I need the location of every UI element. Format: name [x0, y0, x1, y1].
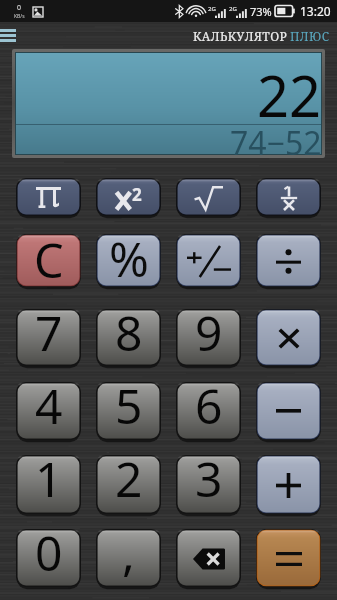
staticText: 22: [257, 57, 322, 133]
staticText: 74−52: [230, 121, 322, 158]
staticText: 7: [35, 300, 63, 358]
staticText: 2: [115, 446, 143, 506]
button[interactable]: Pi: [16, 178, 81, 217]
staticText: 5: [115, 373, 143, 432]
staticText: ПЛЮС: [290, 28, 330, 44]
staticText: 13:20: [300, 3, 331, 19]
staticText: КАЛЬКУЛЯТОР: [193, 28, 288, 44]
button[interactable]: 6: [176, 382, 241, 441]
staticText: 8: [115, 300, 143, 358]
staticText: C: [34, 228, 64, 282]
button[interactable]: ,: [96, 529, 161, 588]
staticText: KB/s: [14, 13, 25, 20]
button[interactable]: 0: [16, 529, 81, 588]
staticText: 0: [35, 520, 63, 579]
button[interactable]: 8: [96, 309, 161, 367]
button[interactable]: Reciprocal: [256, 178, 321, 217]
button[interactable]: Plus: [256, 455, 321, 515]
staticText: 1: [35, 446, 63, 506]
staticText: 2G: [208, 5, 216, 13]
staticText: 6: [195, 373, 223, 432]
button[interactable]: C: [16, 234, 81, 288]
button[interactable]: Equals: [256, 529, 321, 588]
button[interactable]: 5: [96, 382, 161, 441]
button[interactable]: 7: [16, 309, 81, 367]
staticText: %: [109, 226, 149, 280]
button[interactable]: Square root: [176, 178, 241, 217]
button[interactable]: Delete: [176, 529, 241, 588]
button[interactable]: Plus minus: [176, 234, 241, 288]
button[interactable]: Minus: [256, 382, 321, 441]
staticText: 73%: [250, 4, 272, 19]
button[interactable]: 9: [176, 309, 241, 367]
staticText: 2G: [229, 5, 237, 13]
staticText: 9: [195, 300, 223, 358]
button[interactable]: 3: [176, 455, 241, 515]
button[interactable]: Multiply: [256, 309, 321, 367]
staticText: 4: [35, 373, 63, 432]
staticText: 2: [132, 183, 142, 206]
staticText: 0: [17, 3, 22, 13]
button[interactable]: Menu: [0, 26, 22, 45]
button[interactable]: %: [96, 234, 161, 288]
button[interactable]: Divide: [256, 234, 321, 288]
button[interactable]: Square: [96, 178, 161, 217]
staticText: 3: [195, 446, 223, 506]
staticText: ,: [122, 520, 135, 579]
button[interactable]: 2: [96, 455, 161, 515]
button[interactable]: 1: [16, 455, 81, 515]
button[interactable]: 4: [16, 382, 81, 441]
